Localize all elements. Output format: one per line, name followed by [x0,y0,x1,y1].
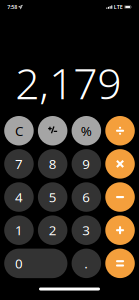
staticText: 5 [49,188,57,206]
staticText: 2,179 [15,54,121,111]
staticText: 7:58 [7,3,17,11]
button[interactable]: 2 [38,215,67,245]
staticText: LTE [114,3,123,11]
button[interactable]: 7 [4,149,34,179]
button[interactable] [105,249,135,278]
button[interactable]: 1 [4,215,34,245]
staticText: 8 [49,155,57,173]
button[interactable]: 3 [72,215,101,245]
button[interactable]: 8 [38,149,67,179]
button[interactable]: 9 [72,149,101,179]
button[interactable]: 5 [38,182,67,212]
button[interactable] [105,116,135,145]
button[interactable]: 6 [72,182,101,212]
button[interactable]: 0 [4,249,67,278]
button[interactable]: % [72,116,101,145]
button[interactable] [38,116,67,145]
staticText: 9 [82,155,90,173]
button[interactable]: . [72,249,101,278]
staticText: 1 [15,221,23,239]
button[interactable] [105,182,135,212]
button[interactable]: 4 [4,182,34,212]
button[interactable] [105,215,135,245]
staticText: 6 [82,188,90,206]
staticText: % [81,122,92,140]
staticText: C [15,122,23,140]
staticText: 7 [15,155,23,173]
staticText: . [84,254,88,272]
button[interactable]: C [4,116,34,145]
staticText: 0 [15,254,23,272]
staticText: 2 [49,221,57,239]
button[interactable] [105,149,135,179]
staticText: 4 [15,188,23,206]
staticText: 3 [82,221,90,239]
